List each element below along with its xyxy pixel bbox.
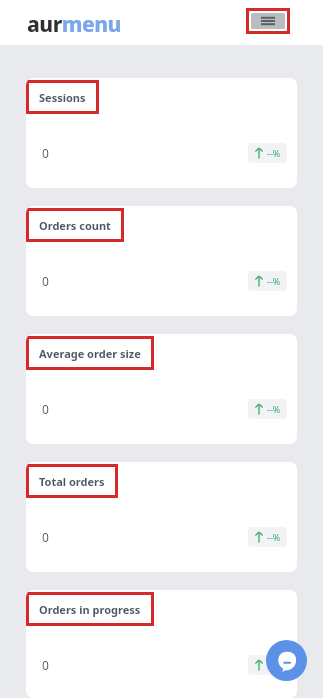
button[interactable]: Open chat	[266, 640, 307, 681]
staticText: 0	[42, 273, 49, 289]
staticText: --%	[267, 275, 281, 287]
button[interactable]: Menu	[251, 13, 285, 29]
staticText: aurmenu	[27, 10, 121, 39]
staticText: --%	[267, 659, 281, 671]
staticText: Orders count	[39, 218, 111, 233]
button[interactable]: Average order size	[26, 334, 297, 444]
staticText: Total orders	[39, 474, 105, 489]
button[interactable]: Orders count	[26, 206, 297, 316]
staticText: 0	[42, 529, 49, 545]
button[interactable]: Total orders	[26, 462, 297, 572]
button[interactable]: Sessions	[26, 78, 297, 188]
staticText: --%	[267, 531, 281, 543]
staticText: Sessions	[39, 90, 86, 105]
staticText: 0	[42, 657, 49, 673]
staticText: Orders in progress	[39, 602, 141, 617]
staticText: 0	[42, 145, 49, 161]
staticText: Average order size	[39, 346, 141, 361]
staticText: 0	[42, 401, 49, 417]
staticText: --%	[267, 403, 281, 415]
button[interactable]: Orders in progress	[26, 590, 297, 698]
staticText: --%	[267, 147, 281, 159]
